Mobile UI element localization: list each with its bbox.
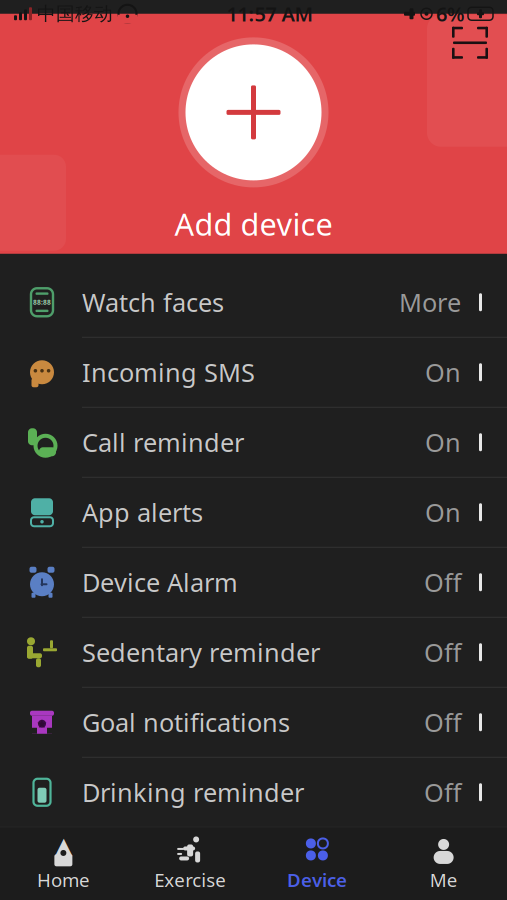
staticText: ▲ — [55, 833, 72, 858]
button[interactable]: 88:88 — [0, 268, 507, 337]
staticText: More — [399, 285, 461, 319]
staticText: 88:88 — [33, 298, 51, 307]
staticText: Goal notifications — [82, 705, 290, 739]
button[interactable]: Add device — [178, 37, 328, 187]
staticText: ★ — [36, 717, 47, 730]
staticText: On — [425, 495, 461, 529]
staticText: Sedentary reminder — [82, 635, 320, 669]
staticText: Drinking reminder — [82, 775, 304, 809]
staticText: On — [425, 355, 461, 389]
button[interactable]: Me — [380, 827, 507, 900]
staticText: Watch faces — [82, 285, 224, 319]
button[interactable]: Call reminder — [0, 407, 507, 477]
staticText: Device — [287, 867, 347, 892]
button[interactable]: Device — [253, 827, 380, 900]
staticText: 中国移动 — [37, 2, 113, 25]
button[interactable]: ▲ — [0, 827, 127, 900]
button[interactable]: Scan QR code — [444, 19, 496, 67]
staticText: App alerts — [82, 495, 203, 529]
staticText: Off — [424, 635, 461, 669]
staticText: Off — [424, 705, 461, 739]
button[interactable]: ★ — [0, 687, 507, 757]
button[interactable]: Drinking reminder — [0, 757, 507, 827]
button[interactable]: Add device — [174, 203, 332, 244]
staticText: 11:57 AM — [226, 0, 313, 27]
staticText: Device Alarm — [82, 565, 238, 599]
button[interactable]: Exercise — [127, 827, 254, 900]
button[interactable]: Incoming SMS — [0, 337, 507, 407]
staticText: Home — [37, 867, 90, 892]
button[interactable]: App alerts — [0, 477, 507, 547]
staticText: Incoming SMS — [82, 355, 255, 389]
staticText: Off — [424, 565, 461, 599]
staticText: On — [425, 425, 461, 459]
staticText: Add device — [174, 203, 332, 244]
staticText: Exercise — [154, 867, 226, 892]
staticText: Me — [430, 867, 458, 892]
button[interactable]: Device Alarm — [0, 547, 507, 617]
button[interactable]: Sedentary reminder — [0, 617, 507, 687]
staticText: Call reminder — [82, 425, 244, 459]
staticText: Off — [424, 775, 461, 809]
staticText: 6% — [436, 0, 465, 27]
